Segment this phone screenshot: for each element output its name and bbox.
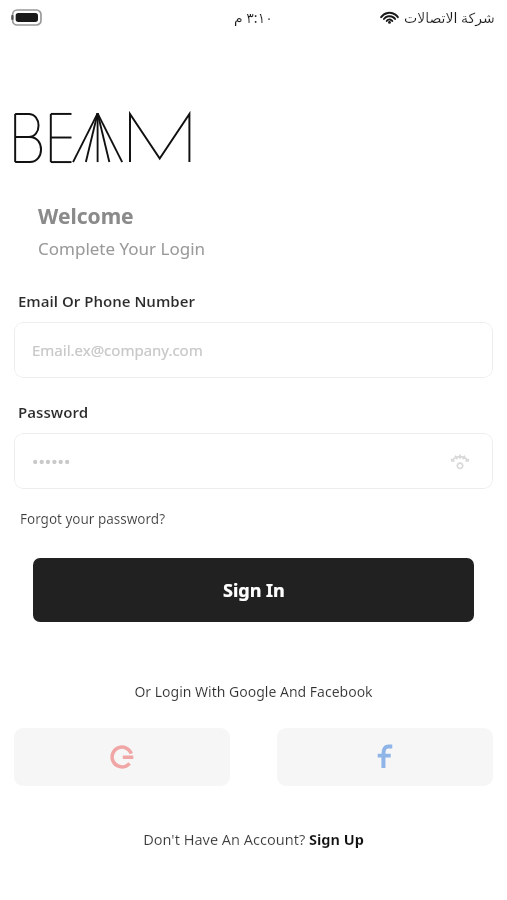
button[interactable]: Sign in with Facebook bbox=[277, 728, 493, 786]
staticText: Don't Have An Account? Sign Up bbox=[143, 829, 364, 849]
staticText: Email Or Phone Number bbox=[18, 291, 195, 311]
staticText: Forgot your password? bbox=[20, 510, 166, 528]
button[interactable]: Sign in with Google bbox=[14, 728, 230, 786]
button[interactable]: Email.ex@company.com bbox=[14, 322, 493, 378]
staticText: Password bbox=[18, 402, 89, 422]
staticText: شركة الاتصالات bbox=[404, 8, 495, 27]
button[interactable]: Sign In bbox=[33, 558, 474, 622]
staticText: Or Login With Google And Facebook bbox=[134, 682, 373, 701]
staticText: ٣:١٠ م bbox=[234, 8, 273, 27]
button[interactable]: Show password bbox=[441, 442, 479, 480]
staticText: Email.ex@company.com bbox=[32, 340, 203, 360]
staticText: Complete Your Login bbox=[38, 237, 206, 260]
button[interactable]: Don't Have An Account? Sign Up bbox=[139, 826, 368, 852]
staticText: Sign In bbox=[223, 578, 285, 603]
other: BEAM bbox=[13, 110, 193, 166]
button[interactable]: Forgot your password? bbox=[18, 508, 168, 530]
button[interactable]: •••••• bbox=[14, 433, 493, 489]
staticText: Welcome bbox=[38, 202, 134, 231]
staticText: •••••• bbox=[32, 450, 71, 473]
